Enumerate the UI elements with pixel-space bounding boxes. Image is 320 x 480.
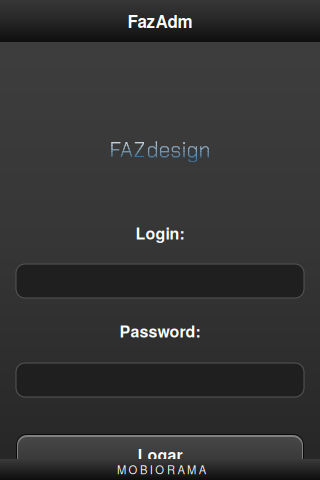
staticText: design [146, 136, 210, 164]
staticText: Logar [137, 443, 182, 466]
staticText: FAZ [110, 136, 145, 164]
staticText: design [146, 136, 210, 164]
staticText: design [146, 136, 210, 164]
staticText: FAZ [110, 136, 145, 164]
staticText: design [146, 136, 210, 164]
staticText: design [146, 136, 210, 164]
staticText: MOBIORAMA [117, 461, 206, 477]
staticText: design [146, 136, 210, 164]
staticText: Login: [135, 221, 184, 244]
staticText: FAZ [110, 136, 145, 164]
staticText: Password: [119, 319, 200, 342]
staticText: design [146, 136, 210, 164]
staticText: FAZ [110, 136, 145, 164]
staticText: FAZ [110, 136, 145, 164]
staticText: design [146, 136, 210, 164]
button[interactable]: Logar [16, 434, 304, 478]
staticText: FAZ [110, 136, 145, 164]
staticText: FAZ [110, 136, 145, 164]
staticText: FazAdm [127, 9, 192, 33]
staticText: FAZ [110, 136, 145, 164]
staticText: design [146, 136, 210, 164]
staticText: design [146, 136, 210, 164]
staticText: design [146, 136, 210, 164]
staticText: FAZ [110, 136, 145, 164]
staticText: design [146, 136, 210, 164]
staticText: design [146, 136, 210, 164]
staticText: FAZ [110, 136, 145, 164]
staticText: FAZ [110, 136, 145, 164]
staticText: design [146, 136, 210, 164]
staticText: FAZ [110, 136, 145, 164]
staticText: FAZ [110, 136, 145, 164]
staticText: FAZ [110, 136, 145, 164]
staticText: FAZ [110, 136, 145, 164]
staticText: design [146, 136, 210, 164]
staticText: FAZ [110, 136, 145, 164]
staticText: design [146, 136, 210, 164]
